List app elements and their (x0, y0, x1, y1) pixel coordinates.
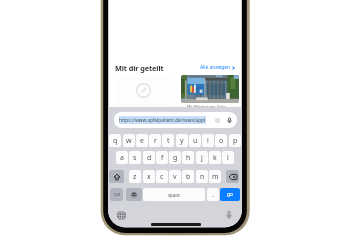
button[interactable]: a (116, 151, 128, 164)
button[interactable]: b (182, 170, 194, 183)
staticText: Mit Mitteilungen, Fotos … (187, 104, 237, 109)
button[interactable]: g (169, 151, 181, 164)
staticText: t (167, 136, 170, 145)
button[interactable]: Dictation (225, 210, 233, 220)
staticText: z (133, 172, 137, 181)
button[interactable]: p (229, 134, 241, 147)
staticText: o (219, 136, 224, 145)
button[interactable]: Voice search (226, 117, 233, 124)
button[interactable]: f (156, 151, 168, 164)
button[interactable]: c (156, 170, 168, 183)
button[interactable]: r (149, 134, 161, 147)
staticText: 123 (113, 192, 121, 198)
staticText: r (154, 136, 157, 145)
staticText: v (173, 172, 177, 181)
button[interactable] (181, 75, 239, 103)
staticText: e (140, 136, 144, 145)
button[interactable]: y (176, 134, 188, 147)
staticText: u (193, 136, 198, 145)
staticText: n (200, 172, 205, 181)
staticText: s (133, 153, 137, 162)
staticText: a (120, 153, 124, 162)
button[interactable]: Clear text (215, 118, 220, 123)
button[interactable]: o (215, 134, 227, 147)
staticText: b (186, 172, 191, 181)
staticText: d (147, 153, 152, 162)
staticText: i (207, 136, 209, 145)
button[interactable]: q (109, 134, 121, 147)
staticText: q (113, 136, 118, 145)
button[interactable]: s (129, 151, 141, 164)
button[interactable]: v (169, 170, 181, 183)
staticText: go (227, 191, 233, 198)
staticText: . (212, 190, 214, 199)
staticText: p (233, 136, 238, 145)
staticText: f (161, 153, 164, 162)
button[interactable]: i (202, 134, 214, 147)
button[interactable] (116, 76, 170, 106)
button[interactable]: x (143, 170, 155, 183)
staticText: h (186, 153, 191, 162)
button[interactable]: k (209, 151, 221, 164)
button[interactable]: z (129, 170, 141, 183)
button[interactable]: . (207, 188, 219, 201)
staticText: Mit dir geteilt (115, 63, 164, 73)
button[interactable]: n (196, 170, 208, 183)
staticText: k (213, 153, 217, 162)
button[interactable]: Switch keyboard (117, 211, 126, 220)
button[interactable]: https://www.apfelpatient.de/news/appl (114, 112, 237, 128)
staticText: w (126, 136, 132, 145)
button[interactable]: 123 (110, 188, 123, 201)
button[interactable]: Emoji (126, 188, 142, 201)
staticText: c (160, 172, 164, 181)
staticText: Alle anzeigen (200, 64, 230, 71)
staticText: https://www.apfelpatient.de/news/appl (119, 117, 206, 123)
staticText: l (227, 153, 229, 162)
button[interactable]: l (222, 151, 234, 164)
button[interactable]: u (189, 134, 201, 147)
staticText: m (212, 172, 219, 181)
button[interactable]: m (209, 170, 221, 183)
staticText: x (147, 172, 151, 181)
button[interactable]: Alle anzeigen (200, 64, 235, 71)
staticText: space (168, 192, 180, 198)
staticText: y (180, 136, 184, 145)
button[interactable]: go (220, 188, 240, 201)
button[interactable]: h (182, 151, 194, 164)
button[interactable]: space (143, 188, 205, 201)
button[interactable]: e (136, 134, 148, 147)
staticText: g (173, 153, 178, 162)
button[interactable]: w (123, 134, 135, 147)
button[interactable]: d (143, 151, 155, 164)
button[interactable]: j (196, 151, 208, 164)
button[interactable]: Backspace (226, 170, 239, 183)
button[interactable]: t (162, 134, 174, 147)
button[interactable]: Shift (109, 170, 124, 183)
staticText: j (201, 153, 203, 162)
